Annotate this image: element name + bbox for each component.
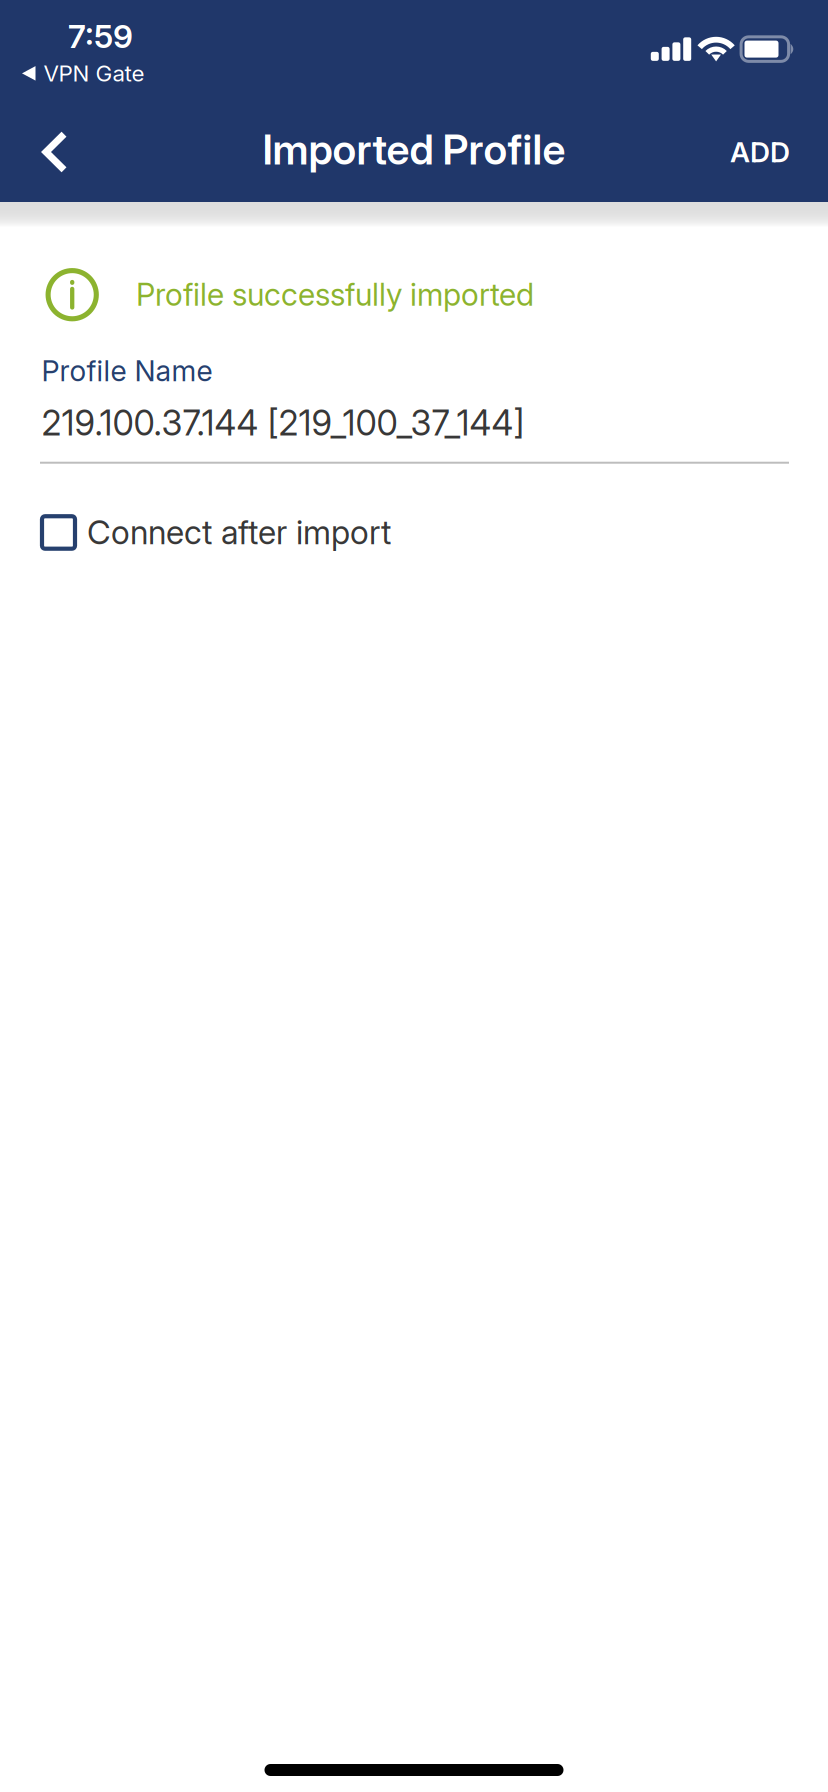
- button[interactable]: ADD: [692, 102, 828, 202]
- staticText: Profile successfully imported: [136, 276, 534, 313]
- button[interactable]: Back: [0, 102, 110, 202]
- staticText: 219.100.37.144 [219_100_37_144]: [41, 402, 524, 444]
- staticText: ADD: [730, 135, 790, 169]
- staticText: Imported Profile: [262, 124, 565, 174]
- staticText: Connect after import: [87, 513, 391, 552]
- button[interactable]: Connect after import: [0, 464, 828, 552]
- staticText: VPN Gate: [43, 60, 144, 87]
- staticText: 7:59: [68, 17, 133, 56]
- button[interactable]: VPN Gate: [0, 56, 144, 90]
- staticText: Profile Name: [41, 353, 212, 388]
